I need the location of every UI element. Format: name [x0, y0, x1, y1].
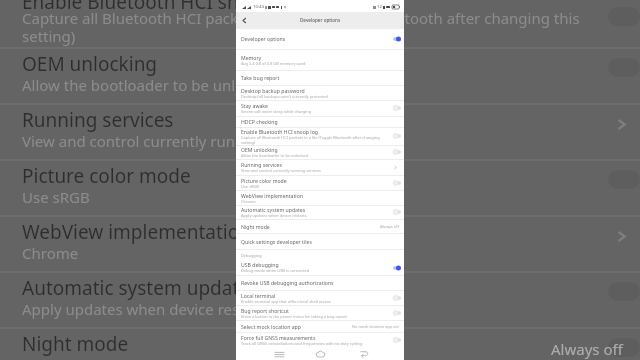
- staticText: Picture color mode: [22, 163, 191, 189]
- staticText: WebView implementation: [241, 192, 303, 199]
- staticText: Chrome: [22, 243, 79, 263]
- button[interactable]: Night mode: [236, 219, 404, 233]
- button[interactable]: Take bug report: [236, 70, 404, 85]
- staticText: setting): [241, 140, 256, 145]
- staticText: Stay awake: [241, 102, 268, 109]
- staticText: OEM unlocking: [22, 51, 158, 77]
- staticText: USB debugging: [241, 261, 279, 268]
- staticText: Revoke USB debugging authorizations: [241, 279, 334, 286]
- button[interactable]: Back: [236, 12, 404, 28]
- button[interactable]: WebView implementation: [236, 190, 404, 205]
- staticText: Automatic system updates: [22, 275, 260, 301]
- staticText: 12: [377, 3, 382, 9]
- staticText: Debug mode when USB is connected: [241, 268, 310, 273]
- button[interactable]: Home: [311, 348, 329, 360]
- staticText: Running services: [241, 161, 282, 168]
- staticText: WebView implementation: [22, 219, 251, 245]
- staticText: Avg 2.4 GB of 3.9 GB memory used: [241, 61, 306, 66]
- staticText: Enable terminal app that offers local sh…: [241, 299, 331, 304]
- staticText: No mock location app set: [352, 324, 399, 329]
- button[interactable]: Force full GNSS measurements: [236, 332, 404, 348]
- staticText: Select mock location app: [241, 323, 301, 330]
- button[interactable]: Memory: [236, 49, 404, 70]
- button[interactable]: Picture color mode: [236, 175, 404, 190]
- staticText: Screen will never sleep while charging: [241, 109, 312, 114]
- staticText: HDCP checking: [241, 118, 278, 125]
- staticText: Automatic system updates: [241, 206, 306, 213]
- button[interactable]: Recent apps: [270, 348, 288, 360]
- button[interactable]: Desktop backup password: [236, 85, 404, 101]
- button[interactable]: Local terminal: [236, 290, 404, 305]
- staticText: Developer options: [241, 35, 286, 42]
- staticText: Running services: [22, 107, 174, 133]
- staticText: Force full GNSS measurements: [241, 334, 316, 341]
- staticText: Enable Bluetooth HCI snoop log: [241, 128, 318, 135]
- staticText: Developer options: [300, 17, 341, 23]
- staticText: Capture all Bluetooth HCI packets in a f…: [22, 8, 580, 28]
- button[interactable]: Automatic system updates: [236, 205, 404, 219]
- staticText: Track all GNSS constellations and freque…: [241, 341, 363, 346]
- staticText: Picture color mode: [241, 177, 287, 184]
- staticText: Use sRGB: [22, 187, 90, 207]
- button[interactable]: OEM unlocking: [236, 145, 404, 159]
- button[interactable]: Revoke USB debugging authorizations: [236, 275, 404, 290]
- staticText: Debugging: [241, 253, 262, 258]
- button[interactable]: Select mock location app: [236, 320, 404, 333]
- staticText: Capture all Bluetooth HCI packets in a f…: [241, 135, 382, 140]
- staticText: Local terminal: [241, 292, 276, 299]
- staticText: Allow the bootloader to be unlocked: [241, 153, 308, 158]
- button[interactable]: Back: [240, 16, 249, 25]
- button[interactable]: Running services: [236, 159, 404, 175]
- button[interactable]: Back: [355, 348, 373, 360]
- staticText: View and control currently running servi…: [241, 168, 322, 173]
- staticText: Desktop full backups aren't currently pr…: [241, 94, 328, 99]
- staticText: Use sRGB: [241, 184, 259, 189]
- staticText: Always off: [551, 339, 623, 359]
- staticText: Bug report shortcut: [241, 307, 289, 314]
- button[interactable]: Stay awake: [236, 100, 404, 116]
- button[interactable]: Quick settings developer tiles: [236, 233, 404, 249]
- staticText: setting): [22, 26, 76, 46]
- button[interactable]: HDCP checking: [236, 116, 404, 127]
- staticText: Night mode: [241, 223, 270, 230]
- staticText: Night mode: [22, 331, 129, 357]
- staticText: Chrome: [241, 199, 256, 204]
- staticText: Show a button in the power menu for taki…: [241, 314, 348, 319]
- button[interactable]: Enable Bluetooth HCI snoop log: [236, 127, 404, 145]
- staticText: Memory: [241, 54, 262, 61]
- staticText: Apply updates when device restarts: [241, 213, 307, 218]
- staticText: Enable Bluetooth HCI snoop log: [22, 0, 307, 15]
- staticText: Allow the bootloader to be unlo: [22, 75, 245, 95]
- button[interactable]: Bug report shortcut: [236, 305, 404, 320]
- staticText: 10:44: [253, 3, 264, 9]
- staticText: View and control currently runn: [22, 131, 245, 151]
- button[interactable]: Debugging: [236, 249, 404, 275]
- staticText: Apply updates when device res: [22, 299, 240, 319]
- staticText: Desktop backup password: [241, 87, 305, 94]
- staticText: Always off: [380, 224, 399, 229]
- button[interactable]: Developer options: [236, 28, 404, 49]
- staticText: Quick settings developer tiles: [241, 238, 312, 245]
- staticText: OEM unlocking: [241, 146, 278, 153]
- staticText: Take bug report: [241, 74, 280, 81]
